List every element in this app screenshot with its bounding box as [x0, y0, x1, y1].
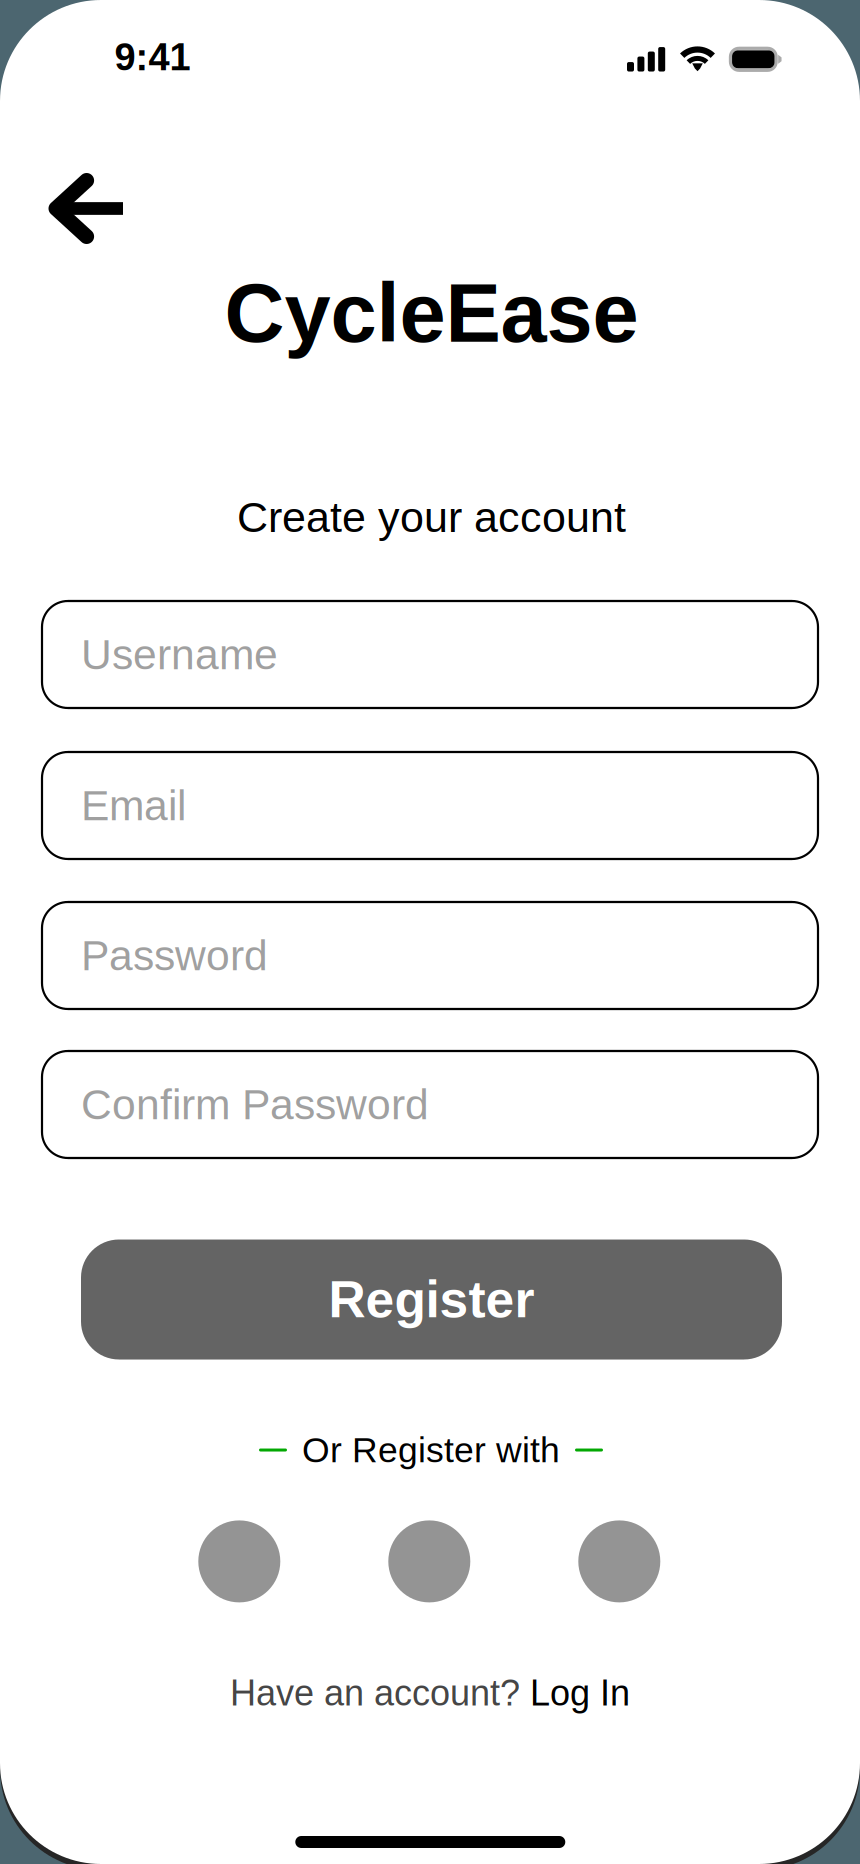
button[interactable]: Sign up with Google — [198, 1520, 280, 1602]
staticText: Email — [81, 782, 186, 829]
staticText: Have an account? — [230, 1673, 530, 1713]
button[interactable]: Sign up with Facebook — [578, 1520, 660, 1602]
staticText: Password — [81, 932, 268, 979]
button[interactable]: Password — [42, 902, 818, 1009]
button[interactable]: Username — [42, 601, 818, 708]
staticText: Confirm Password — [81, 1081, 429, 1128]
button[interactable]: Back — [26, 151, 145, 266]
button[interactable]: Have an account? — [230, 1673, 630, 1713]
staticText: Username — [81, 631, 278, 678]
button[interactable]: Register — [81, 1239, 782, 1359]
staticText: Register — [328, 1271, 534, 1328]
button[interactable]: Email — [42, 752, 818, 859]
staticText: Create your account — [237, 493, 626, 541]
staticText: Log In — [530, 1673, 630, 1713]
staticText: 9:41 — [114, 36, 190, 78]
button[interactable]: Confirm Password — [42, 1051, 818, 1158]
staticText: CycleEase — [224, 267, 638, 359]
staticText: Or Register with — [302, 1430, 560, 1470]
button[interactable]: Sign up with Apple — [388, 1520, 470, 1602]
